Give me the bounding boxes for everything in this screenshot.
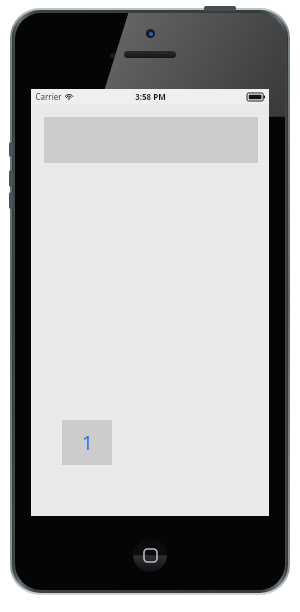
button[interactable]: 1 bbox=[62, 420, 112, 465]
staticText: 3:58 PM bbox=[135, 91, 166, 102]
button[interactable]: Volume up bbox=[9, 170, 13, 187]
staticText: 1 bbox=[82, 430, 93, 456]
button[interactable]: Home bbox=[133, 538, 167, 572]
button[interactable]: Silent switch bbox=[9, 142, 13, 157]
staticText: Carrier bbox=[35, 91, 62, 102]
button[interactable]: Volume down bbox=[9, 192, 13, 209]
button[interactable]: Power bbox=[204, 6, 236, 11]
